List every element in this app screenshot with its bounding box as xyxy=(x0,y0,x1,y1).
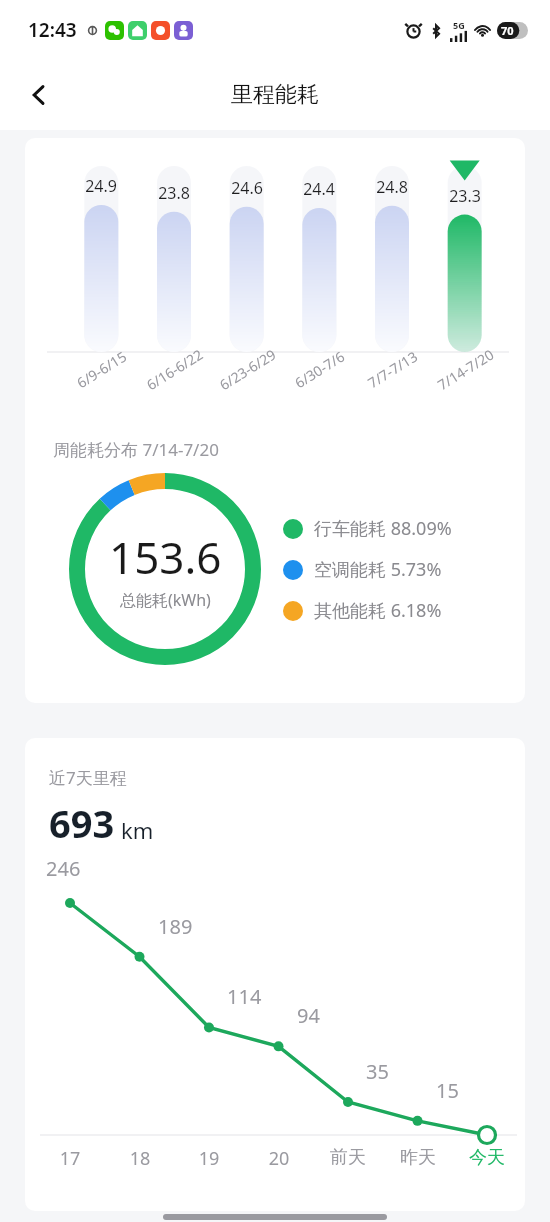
staticText: 693 xyxy=(49,797,115,849)
staticText: 7/7-7/13 xyxy=(364,347,421,392)
staticText: 246 xyxy=(46,855,104,882)
staticText: 23.3 xyxy=(441,185,489,207)
staticText: 前天 xyxy=(318,1146,378,1169)
staticText: 70 xyxy=(501,23,514,38)
staticText: 里程能耗 xyxy=(231,81,319,109)
staticText: 189 xyxy=(158,913,216,940)
staticText: 12:43 xyxy=(28,17,77,43)
staticText: 6/23-6/29 xyxy=(216,345,279,394)
staticText: 24.9 xyxy=(77,175,125,197)
staticText: 近7天里程 xyxy=(49,766,127,789)
staticText: 19 xyxy=(179,1146,239,1171)
staticText: 20 xyxy=(249,1146,309,1171)
staticText: 24.6 xyxy=(223,177,271,199)
staticText: km xyxy=(121,815,154,845)
staticText: 24.4 xyxy=(295,178,343,200)
staticText: 6/30-7/6 xyxy=(291,347,348,392)
staticText: 其他能耗 6.18% xyxy=(314,598,442,623)
staticText: 114 xyxy=(227,983,285,1010)
staticText: 18 xyxy=(110,1146,170,1171)
staticText: 行车能耗 88.09% xyxy=(314,516,452,541)
staticText: 15 xyxy=(436,1077,494,1104)
staticText: 总能耗(kWh) xyxy=(120,589,211,611)
staticText: 94 xyxy=(297,1002,355,1029)
staticText: 昨天 xyxy=(388,1146,448,1169)
staticText: 今天 xyxy=(457,1146,517,1169)
staticText: 6/9-6/15 xyxy=(73,347,130,392)
staticText: 153.6 xyxy=(109,527,222,587)
staticText: 5G xyxy=(453,19,465,31)
staticText: 空调能耗 5.73% xyxy=(314,557,442,582)
staticText: 7/14-7/20 xyxy=(434,345,497,394)
button[interactable]: Back xyxy=(16,72,62,118)
staticText: 24.8 xyxy=(368,176,416,198)
staticText: 35 xyxy=(366,1058,424,1085)
staticText: 周能耗分布 7/14-7/20 xyxy=(53,438,219,461)
staticText: 23.8 xyxy=(150,182,198,204)
staticText: 6/16-6/22 xyxy=(143,345,206,394)
staticText: 17 xyxy=(40,1146,100,1171)
